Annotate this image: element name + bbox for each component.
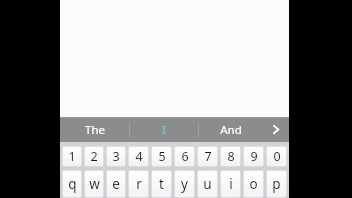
staticText: u — [203, 175, 212, 193]
button[interactable]: q — [62, 170, 82, 198]
staticText: 0 — [273, 148, 281, 165]
button[interactable]: r — [128, 170, 149, 198]
staticText: The — [85, 122, 105, 138]
button[interactable]: 0 — [266, 146, 287, 167]
button[interactable]: 4 — [128, 146, 149, 167]
staticText: 3 — [112, 148, 120, 165]
staticText: I — [162, 122, 166, 138]
staticText: y — [181, 175, 188, 193]
staticText: i — [229, 175, 233, 193]
button[interactable]: o — [243, 170, 264, 198]
button[interactable]: e — [106, 170, 126, 198]
button[interactable]: And — [199, 117, 262, 142]
button[interactable]: u — [197, 170, 218, 198]
staticText: 7 — [204, 148, 212, 165]
staticText: 5 — [158, 148, 166, 165]
button[interactable]: More suggestions — [262, 117, 289, 142]
button[interactable]: i — [220, 170, 241, 198]
staticText: q — [68, 175, 77, 193]
staticText: p — [272, 175, 281, 193]
button[interactable]: p — [266, 170, 287, 198]
staticText: t — [159, 175, 164, 193]
staticText: 6 — [181, 148, 189, 165]
button[interactable]: 3 — [106, 146, 126, 167]
button[interactable]: 1 — [62, 146, 82, 167]
button[interactable]: 9 — [243, 146, 264, 167]
staticText: o — [249, 175, 258, 193]
button[interactable]: w — [84, 170, 104, 198]
button[interactable]: 5 — [151, 146, 172, 167]
staticText: 9 — [250, 148, 258, 165]
button[interactable]: The — [60, 117, 129, 142]
staticText: 1 — [68, 148, 76, 165]
button[interactable]: y — [174, 170, 195, 198]
button[interactable]: 8 — [220, 146, 241, 167]
staticText: w — [89, 175, 100, 193]
staticText: r — [136, 175, 142, 193]
button[interactable]: I — [130, 117, 198, 142]
button[interactable]: 7 — [197, 146, 218, 167]
staticText: 4 — [135, 148, 143, 165]
staticText: And — [220, 122, 242, 138]
staticText: 8 — [227, 148, 235, 165]
staticText: e — [112, 175, 120, 193]
staticText: 2 — [90, 148, 98, 165]
button[interactable]: 2 — [84, 146, 104, 167]
button[interactable]: t — [151, 170, 172, 198]
button[interactable]: 6 — [174, 146, 195, 167]
